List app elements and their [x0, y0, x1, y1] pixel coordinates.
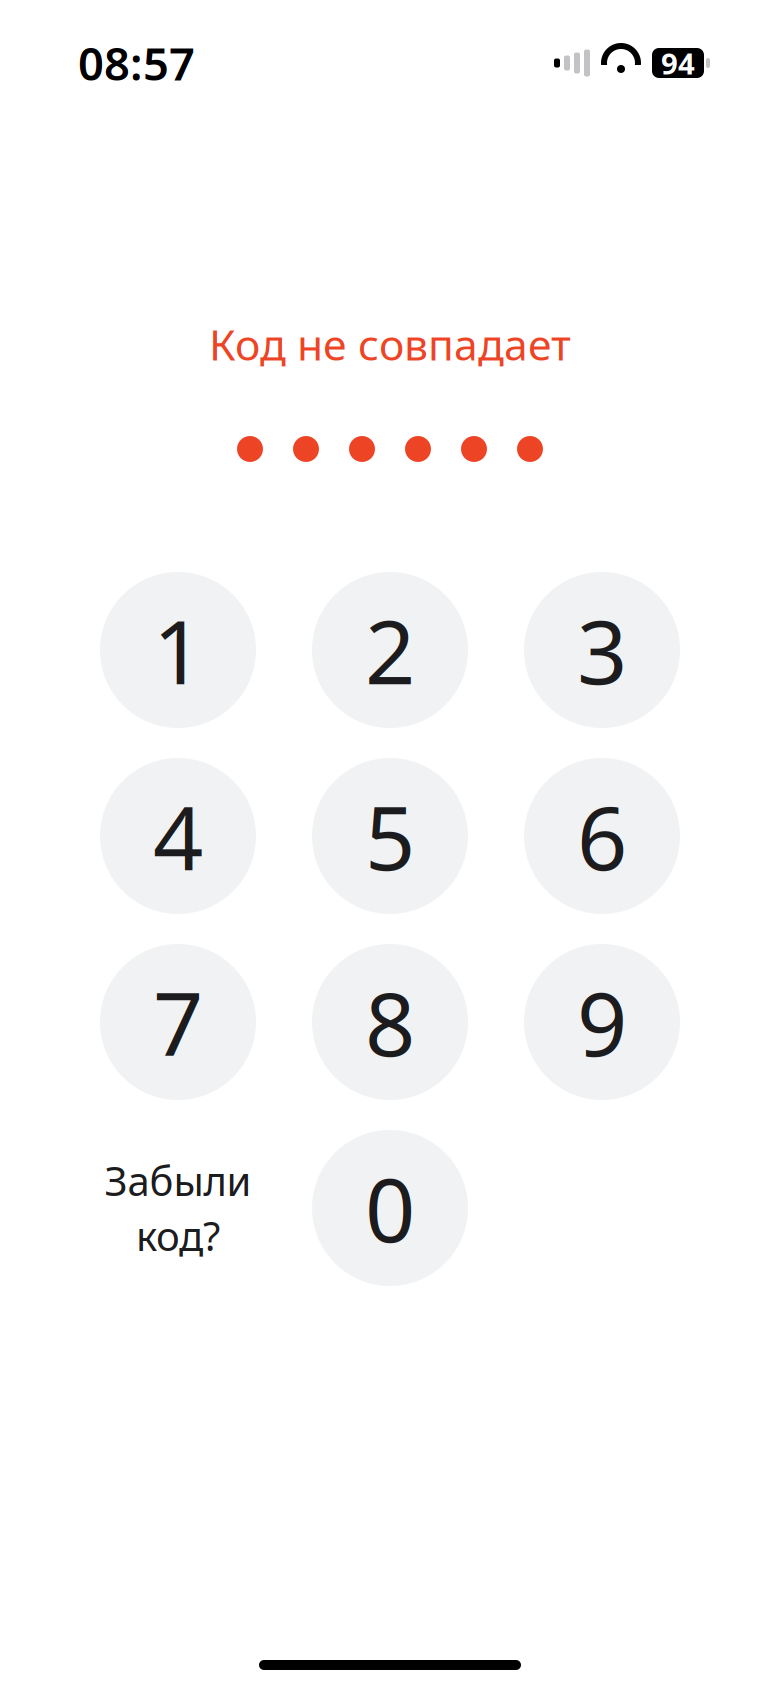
button[interactable]: 4: [100, 758, 256, 914]
button[interactable]: 3: [524, 572, 680, 728]
button[interactable]: 0: [312, 1130, 468, 1286]
button[interactable]: Забыли: [100, 1130, 256, 1286]
button[interactable]: 2: [312, 572, 468, 728]
staticText: 94: [661, 43, 695, 82]
button[interactable]: 1: [100, 572, 256, 728]
button[interactable]: 7: [100, 944, 256, 1100]
staticText: 2: [365, 592, 415, 708]
staticText: Код не совпадает: [209, 316, 571, 372]
button[interactable]: 8: [312, 944, 468, 1100]
staticText: 3: [577, 592, 627, 708]
staticText: 9: [577, 964, 627, 1080]
button[interactable]: 5: [312, 758, 468, 914]
staticText: 8: [365, 964, 415, 1080]
staticText: код?: [136, 1209, 220, 1262]
staticText: 08:57: [78, 33, 195, 93]
button[interactable]: 9: [524, 944, 680, 1100]
staticText: 5: [365, 778, 415, 894]
staticText: 4: [153, 778, 203, 894]
staticText: Забыли: [104, 1154, 251, 1207]
staticText: 0: [365, 1150, 415, 1266]
staticText: 1: [153, 592, 203, 708]
staticText: 6: [577, 778, 627, 894]
button[interactable]: 6: [524, 758, 680, 914]
staticText: 7: [153, 964, 203, 1080]
